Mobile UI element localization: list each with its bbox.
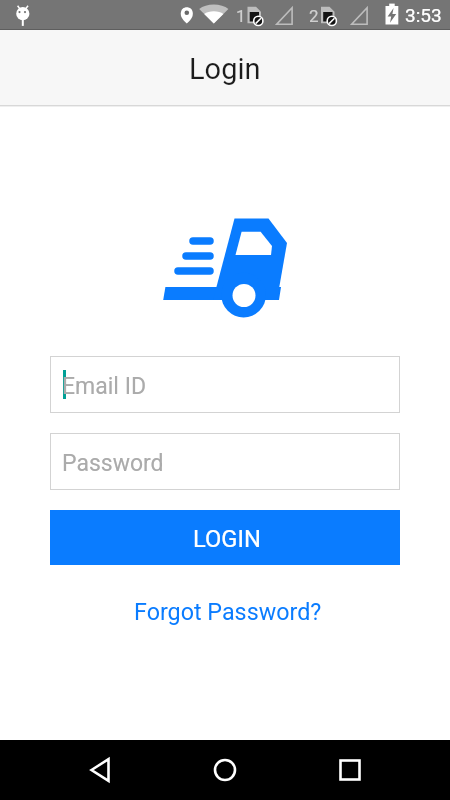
button[interactable]: Home	[185, 740, 265, 800]
staticText: LOGIN	[193, 525, 261, 553]
staticText: 3:53	[405, 4, 442, 26]
staticText: Email ID	[62, 373, 146, 400]
button[interactable]: Email ID	[50, 356, 400, 413]
button[interactable]: LOGIN	[50, 510, 400, 565]
staticText: 2	[309, 6, 319, 26]
button[interactable]: Password	[50, 433, 400, 490]
staticText: Login	[189, 52, 261, 86]
staticText: Password	[62, 450, 164, 477]
button[interactable]: Recent apps	[310, 740, 390, 800]
staticText: 1	[236, 6, 246, 26]
staticText: Forgot Password?	[134, 598, 322, 625]
button[interactable]: Forgot Password?	[125, 592, 325, 628]
button[interactable]: Back	[60, 740, 140, 800]
